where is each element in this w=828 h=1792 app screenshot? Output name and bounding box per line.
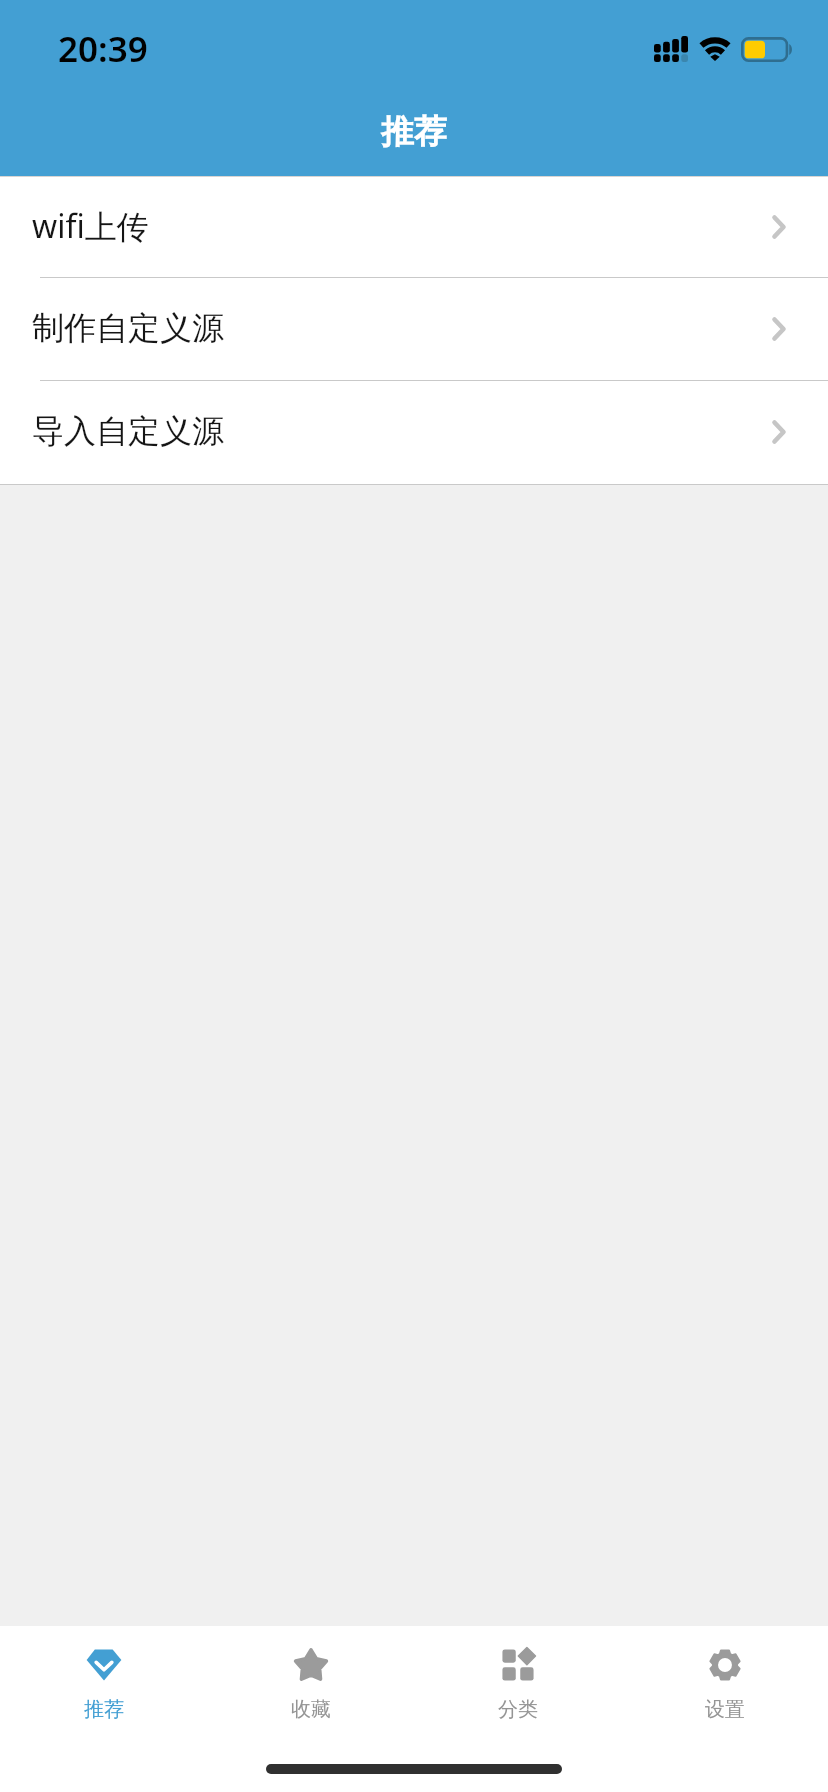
button[interactable]: 设置 <box>621 1626 828 1722</box>
staticText: 制作自定义源 <box>32 308 224 348</box>
button[interactable]: wifi上传 <box>0 177 828 278</box>
staticText: 分类 <box>498 1697 538 1722</box>
button[interactable]: 制作自定义源 <box>0 278 828 381</box>
staticText: 推荐 <box>381 111 447 153</box>
staticText: 20:39 <box>58 25 148 73</box>
button[interactable]: 收藏 <box>207 1626 414 1722</box>
staticText: 设置 <box>705 1697 745 1722</box>
staticText: 收藏 <box>291 1697 331 1722</box>
other: 推荐 <box>86 1647 122 1683</box>
staticText: wifi上传 <box>32 204 149 248</box>
staticText: 导入自定义源 <box>32 411 224 451</box>
other: 设置 <box>707 1647 743 1683</box>
button[interactable]: 推荐 <box>0 1626 207 1722</box>
button[interactable]: 导入自定义源 <box>0 381 828 484</box>
other: 分类 <box>500 1647 536 1683</box>
button[interactable]: 分类 <box>414 1626 621 1722</box>
staticText: 推荐 <box>84 1697 124 1722</box>
other: 收藏 <box>293 1647 329 1683</box>
